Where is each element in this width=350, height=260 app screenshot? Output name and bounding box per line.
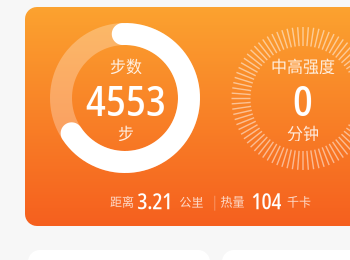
staticText: 公里 — [179, 193, 203, 210]
staticText: 步 — [118, 121, 134, 144]
staticText: 104 — [251, 186, 281, 216]
staticText: 千卡 — [287, 193, 311, 210]
staticText: 4553 — [86, 72, 166, 128]
staticText: 分钟 — [287, 121, 319, 144]
staticText: 中高强度 — [271, 54, 335, 77]
staticText: 0 — [293, 72, 313, 128]
staticText: 步数 — [110, 54, 142, 77]
staticText: | — [213, 191, 217, 211]
staticText: 距离 — [110, 193, 134, 210]
staticText: 3.21 — [137, 186, 172, 216]
staticText: 热量 — [220, 193, 244, 210]
